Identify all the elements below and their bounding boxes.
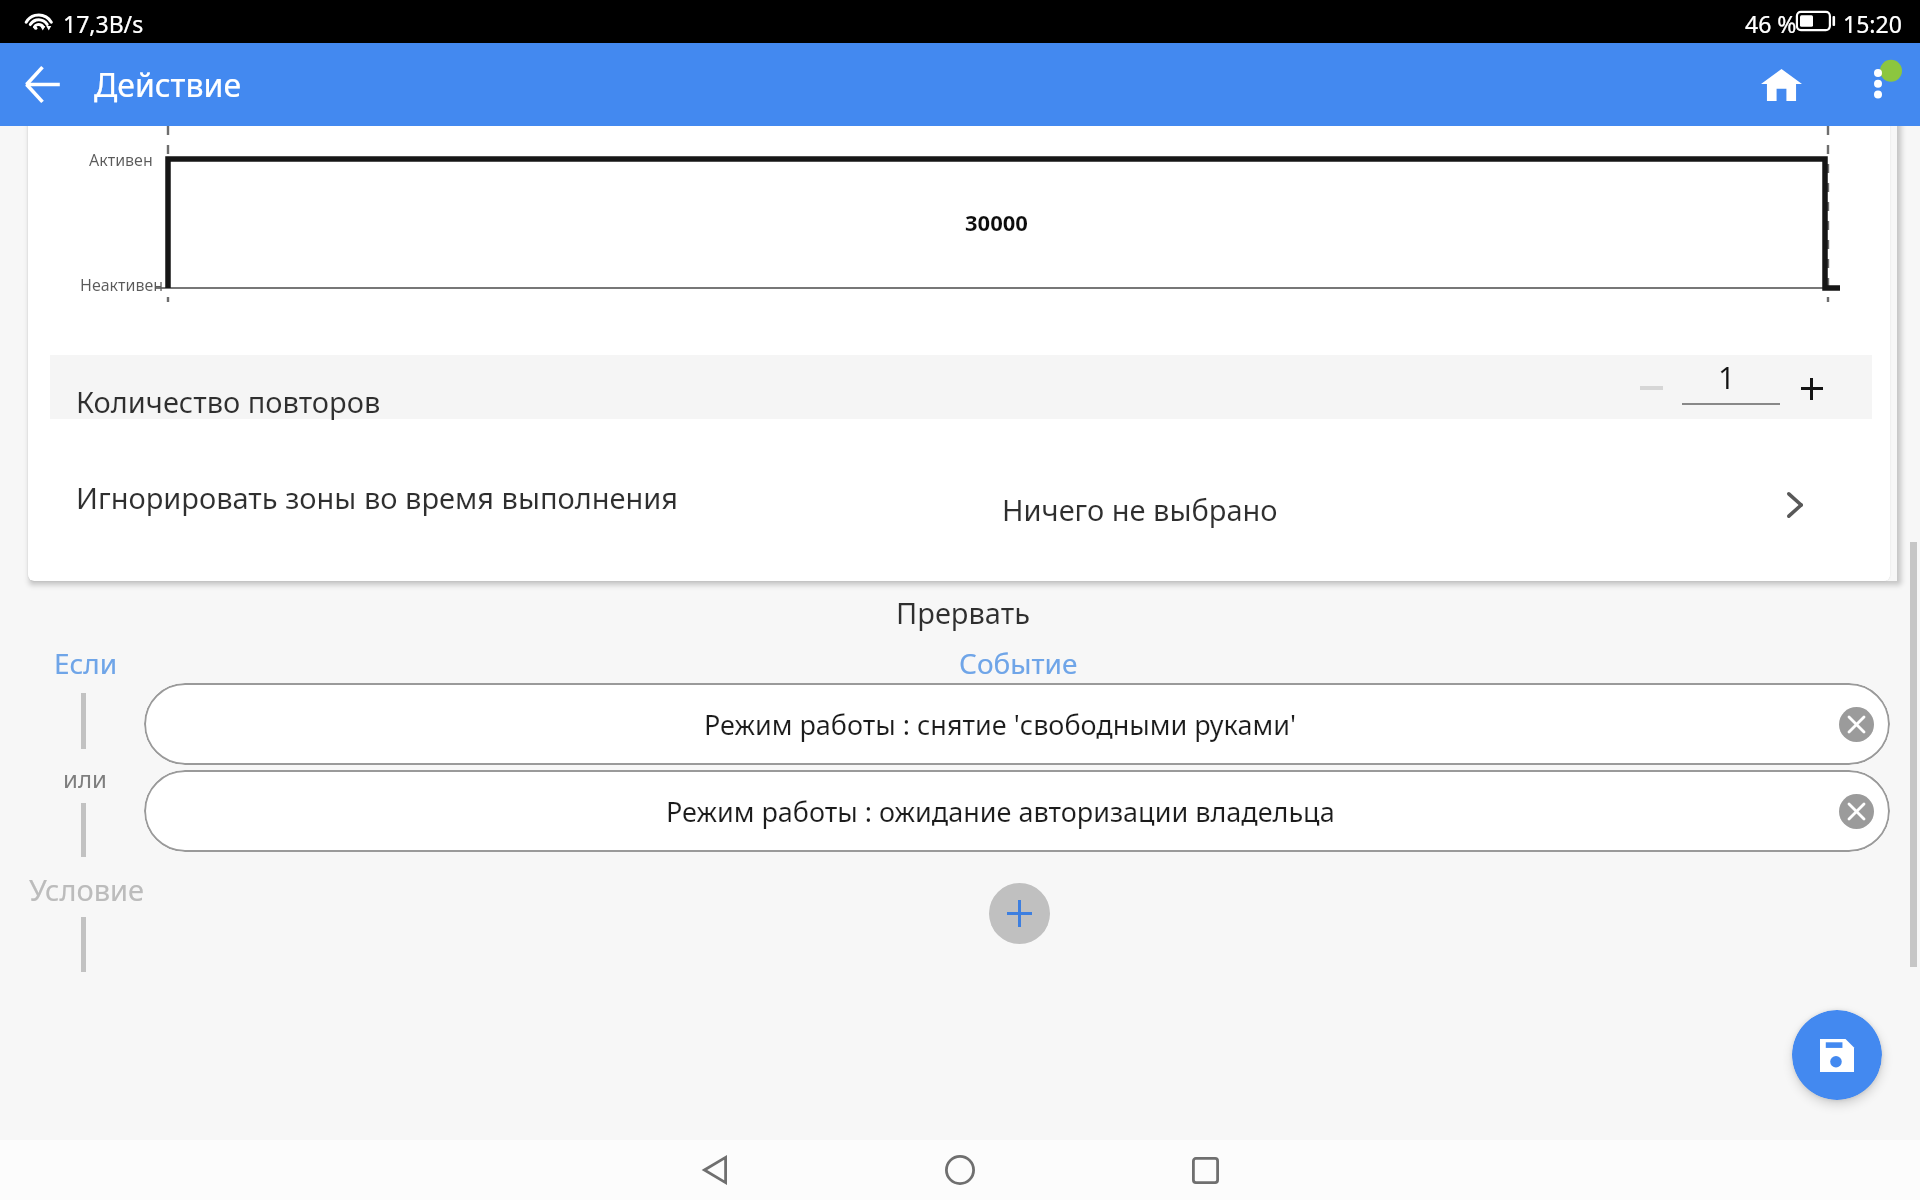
staticText: Количество повторов (76, 382, 381, 421)
button[interactable]: Save (1792, 1010, 1882, 1100)
button[interactable]: Increase (1780, 355, 1844, 419)
staticText: Режим работы : ожидание авторизации влад… (666, 793, 1335, 830)
button[interactable]: Home (923, 1133, 997, 1200)
button[interactable]: Home (1740, 43, 1823, 126)
staticText: Условие (29, 870, 145, 909)
button[interactable]: More options (1838, 43, 1920, 126)
staticText: Режим работы : снятие 'свободными руками… (704, 706, 1297, 743)
staticText: 30000 (965, 207, 1028, 237)
button[interactable]: Режим работы : снятие 'свободными руками… (144, 683, 1890, 765)
button[interactable] (50, 455, 1872, 551)
staticText: 17,3B/s (63, 8, 144, 39)
staticText: Действие (94, 63, 242, 107)
button[interactable]: Remove (1839, 707, 1874, 742)
staticText: Неактивен (80, 274, 164, 296)
button[interactable]: Decrease (1610, 355, 1692, 419)
staticText: Если (54, 644, 118, 682)
staticText: Ничего не выбрано (1002, 490, 1278, 529)
staticText: Активен (89, 149, 153, 171)
button[interactable]: Режим работы : ожидание авторизации влад… (144, 770, 1890, 852)
button[interactable]: Recents (1168, 1133, 1242, 1200)
staticText: Прервать (896, 593, 1030, 632)
staticText: 15:20 (1843, 8, 1902, 39)
staticText: Событие (959, 644, 1078, 682)
button[interactable]: Add condition (989, 883, 1050, 944)
staticText: 46 % (1745, 8, 1797, 39)
button[interactable] (50, 355, 1872, 419)
staticText: 1 (1718, 357, 1736, 398)
staticText: Игнорировать зоны во время выполнения (76, 478, 679, 517)
staticText: или (63, 762, 107, 795)
button[interactable]: Remove (1839, 794, 1874, 829)
button[interactable]: Back (0, 43, 84, 126)
button[interactable]: Back (678, 1133, 752, 1200)
